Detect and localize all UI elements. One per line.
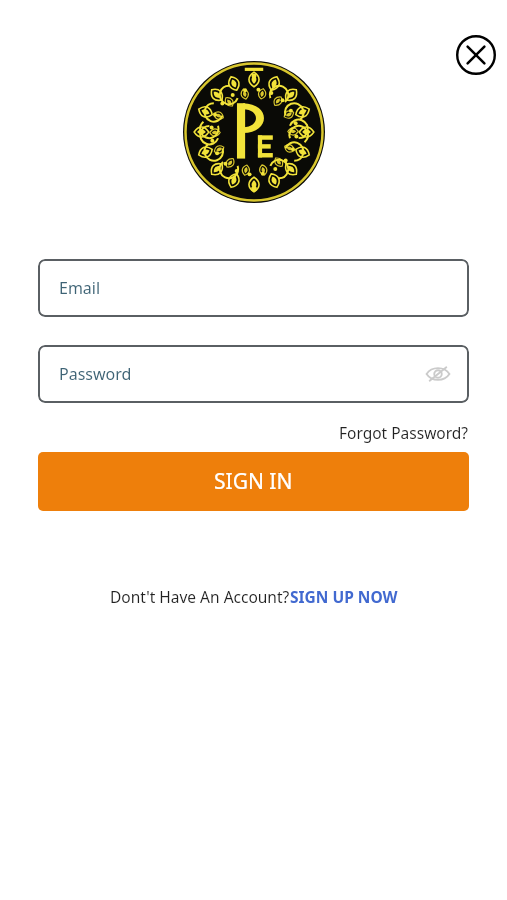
- staticText: Dont't Have An Account?: [110, 586, 290, 607]
- button[interactable]: Close: [452, 31, 500, 79]
- staticText: Password: [59, 363, 132, 385]
- button[interactable]: Email: [38, 259, 469, 317]
- staticText: Email: [59, 277, 101, 299]
- staticText: SIGN UP NOW: [290, 586, 398, 607]
- button[interactable]: Forgot Password?: [339, 422, 469, 443]
- button[interactable]: Show password: [421, 357, 455, 391]
- button[interactable]: SIGN UP NOW: [290, 586, 398, 607]
- button[interactable]: SIGN IN: [38, 452, 469, 511]
- staticText: SIGN IN: [214, 467, 293, 496]
- staticText: Forgot Password?: [339, 422, 469, 443]
- button[interactable]: Password: [38, 345, 469, 403]
